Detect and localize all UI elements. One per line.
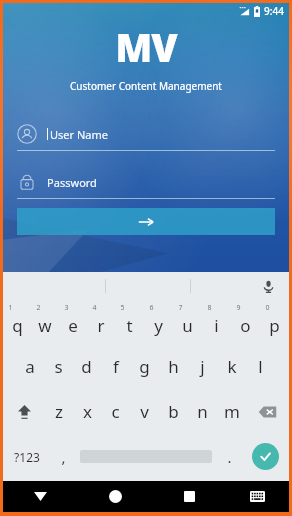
button[interactable]: Space	[76, 434, 216, 479]
button[interactable]: 2	[31, 299, 59, 344]
button[interactable]: z	[45, 389, 73, 434]
staticText: x	[83, 400, 92, 423]
staticText: User Name	[50, 127, 108, 142]
button[interactable]: 5	[115, 299, 144, 344]
staticText: ,	[61, 447, 66, 467]
button[interactable]: .	[216, 434, 242, 479]
button[interactable]: k	[217, 344, 246, 389]
button[interactable]: ?123	[3, 434, 50, 479]
button[interactable]: Password	[17, 169, 275, 195]
button[interactable]: n	[188, 389, 217, 434]
button[interactable]: Recents	[152, 481, 226, 512]
staticText: a	[25, 355, 35, 378]
button[interactable]: 4	[87, 299, 115, 344]
button[interactable]: 0	[260, 299, 289, 344]
staticText: e	[68, 314, 78, 337]
button[interactable]: Enter	[242, 434, 289, 479]
staticText: 0	[265, 303, 270, 313]
staticText: v	[140, 400, 149, 423]
button[interactable]: v	[130, 389, 159, 434]
button[interactable]: 6	[144, 299, 173, 344]
button[interactable]: l	[246, 344, 275, 389]
staticText: y	[154, 314, 163, 337]
button[interactable]: User Name	[17, 121, 275, 147]
staticText: s	[54, 355, 63, 378]
staticText: j	[200, 355, 205, 378]
staticText: Customer Content Management	[70, 79, 222, 93]
staticText: 8	[207, 303, 212, 313]
button[interactable]: 3	[59, 299, 87, 344]
staticText: 9	[236, 303, 241, 313]
button[interactable]: Shift	[3, 389, 45, 434]
staticText: 5	[120, 303, 125, 313]
button[interactable]: j	[188, 344, 217, 389]
button[interactable]: 1	[3, 299, 31, 344]
staticText: f	[113, 355, 119, 378]
staticText: ?123	[14, 449, 40, 465]
staticText: t	[126, 314, 133, 337]
staticText: w	[38, 314, 52, 337]
button[interactable]: Sign in	[17, 208, 275, 235]
staticText: r	[97, 314, 105, 337]
button[interactable]: Hide keyboard	[3, 481, 78, 512]
button[interactable]: Home	[78, 481, 152, 512]
button[interactable]: ,	[50, 434, 76, 479]
button[interactable]: a	[16, 344, 44, 389]
button[interactable]: x	[73, 389, 101, 434]
button[interactable]: 8	[202, 299, 231, 344]
staticText: 9:44	[264, 4, 284, 18]
button[interactable]: 9	[231, 299, 260, 344]
button[interactable]: f	[101, 344, 130, 389]
staticText: .	[227, 447, 232, 467]
button[interactable]: 7	[173, 299, 202, 344]
staticText: 2	[36, 303, 41, 313]
button[interactable]: Backspace	[246, 389, 289, 434]
button[interactable]: c	[101, 389, 130, 434]
staticText: q	[12, 314, 23, 337]
button[interactable]: s	[44, 344, 72, 389]
staticText: 7	[178, 303, 183, 313]
staticText: k	[227, 355, 237, 378]
staticText: 1	[8, 303, 13, 313]
staticText: z	[55, 400, 63, 423]
staticText: Password	[47, 175, 97, 190]
staticText: d	[81, 355, 92, 378]
staticText: g	[139, 355, 150, 378]
button[interactable]: d	[72, 344, 101, 389]
button[interactable]: Switch keyboard	[226, 481, 289, 512]
staticText: n	[197, 400, 208, 423]
button[interactable]: h	[159, 344, 188, 389]
button[interactable]: m	[217, 389, 246, 434]
staticText: m	[224, 400, 240, 423]
staticText: c	[111, 400, 120, 423]
staticText: MV	[115, 21, 177, 73]
staticText: b	[168, 400, 179, 423]
staticText: 4	[92, 303, 97, 313]
staticText: 3	[64, 303, 69, 313]
button[interactable]: b	[159, 389, 188, 434]
staticText: u	[182, 314, 193, 337]
button[interactable]: Voice input	[258, 276, 278, 296]
staticText: 6	[149, 303, 154, 313]
staticText: o	[240, 314, 251, 337]
staticText: l	[258, 355, 263, 378]
staticText: p	[269, 314, 280, 337]
button[interactable]: g	[130, 344, 159, 389]
staticText: i	[214, 314, 219, 337]
staticText: h	[168, 355, 179, 378]
